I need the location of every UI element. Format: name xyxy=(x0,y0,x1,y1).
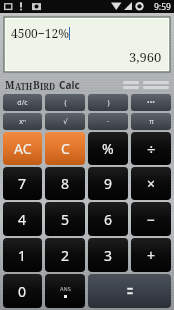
staticText: IRD xyxy=(40,81,56,92)
staticText: 4500−12% xyxy=(11,25,69,41)
staticText: 3,960 xyxy=(129,48,162,66)
staticText: 6 xyxy=(104,210,113,229)
staticText: 1 xyxy=(18,246,27,265)
button[interactable]: % xyxy=(88,132,128,165)
staticText: · xyxy=(107,117,109,127)
staticText: C xyxy=(61,139,70,158)
button[interactable]: d/c xyxy=(3,94,42,111)
button[interactable]: π xyxy=(131,113,171,130)
button[interactable]: 9 xyxy=(88,167,128,200)
button[interactable]: AC xyxy=(3,132,42,165)
button[interactable]: 7 xyxy=(3,167,42,200)
staticText: % xyxy=(102,139,114,158)
staticText: × xyxy=(147,174,156,193)
staticText: π xyxy=(149,117,154,127)
button[interactable]: 4 xyxy=(3,202,42,236)
staticText: AC xyxy=(14,139,32,158)
button[interactable]: − xyxy=(131,202,171,236)
button[interactable]: 0 xyxy=(3,274,42,308)
staticText: 3 xyxy=(104,246,113,265)
staticText: 0 xyxy=(18,282,27,301)
staticText: 8 xyxy=(61,174,70,193)
button[interactable]: ( xyxy=(45,94,85,111)
staticText: ) xyxy=(107,98,110,108)
staticText: − xyxy=(147,210,156,229)
button[interactable]: × xyxy=(131,167,171,200)
button[interactable]: √ xyxy=(45,113,85,130)
staticText: B xyxy=(33,78,40,92)
staticText: d/c xyxy=(17,98,28,108)
staticText: 9 xyxy=(104,174,113,193)
button[interactable]: Equals xyxy=(88,274,171,308)
button[interactable]: 6 xyxy=(88,202,128,236)
staticText: ATH xyxy=(15,81,33,92)
staticText: xⁿ xyxy=(19,117,26,127)
button[interactable]: 1 xyxy=(3,238,42,272)
button[interactable]: 8 xyxy=(45,167,85,200)
staticText: 7 xyxy=(18,174,27,193)
staticText: √ xyxy=(63,118,68,126)
button[interactable]: + xyxy=(131,238,171,272)
button[interactable]: 2 xyxy=(45,238,85,272)
staticText: Calc xyxy=(59,78,80,92)
button[interactable]: 5 xyxy=(45,202,85,236)
staticText: ••• xyxy=(147,98,155,108)
staticText: ( xyxy=(64,98,67,108)
button[interactable]: ÷ xyxy=(131,132,171,165)
button[interactable]: · xyxy=(88,113,128,130)
staticText: 4 xyxy=(18,210,27,229)
button[interactable]: xⁿ xyxy=(3,113,42,130)
staticText: M xyxy=(5,78,15,92)
button[interactable]: C xyxy=(45,132,85,165)
button[interactable]: 3 xyxy=(88,238,128,272)
staticText: + xyxy=(147,246,156,265)
staticText: 2 xyxy=(61,246,70,265)
button[interactable]: Decimal point, ANS xyxy=(45,274,85,308)
staticText: ANS xyxy=(60,285,71,292)
staticText: 9:59 xyxy=(154,1,171,13)
button[interactable]: ) xyxy=(88,94,128,111)
button[interactable]: ••• xyxy=(131,94,171,111)
staticText: 5 xyxy=(61,210,70,229)
staticText: ÷ xyxy=(147,139,156,159)
